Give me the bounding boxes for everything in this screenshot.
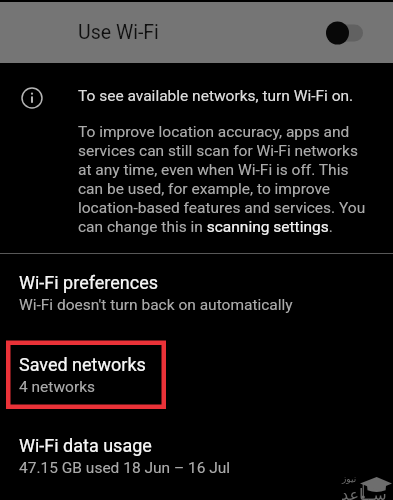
staticText: Saved networks [19,354,146,375]
staticText: Wi-Fi doesn't turn back on automatically [19,296,293,314]
staticText: 4 networks [19,378,96,396]
staticText: 47.15 GB used 18 Jun – 16 Jul [19,459,231,477]
staticText: To improve location accuracy, apps and s… [78,123,368,236]
other: Information [21,87,43,109]
button[interactable]: Wi-Fi preferences [0,272,393,314]
staticText: Use Wi-Fi [78,21,159,44]
button[interactable]: Saved networks [0,354,393,396]
staticText: Wi-Fi data usage [19,435,152,456]
staticText: Wi-Fi preferences [19,272,158,293]
staticText: ســاعد [341,485,387,500]
button[interactable]: Wi-Fi data usage [0,435,393,477]
button[interactable]: Use Wi-Fi [0,2,393,63]
staticText: To see available networks, turn Wi-Fi on… [78,87,354,105]
button[interactable]: Use Wi-Fi toggle, off [320,16,368,50]
staticText: نیوز [342,474,357,484]
